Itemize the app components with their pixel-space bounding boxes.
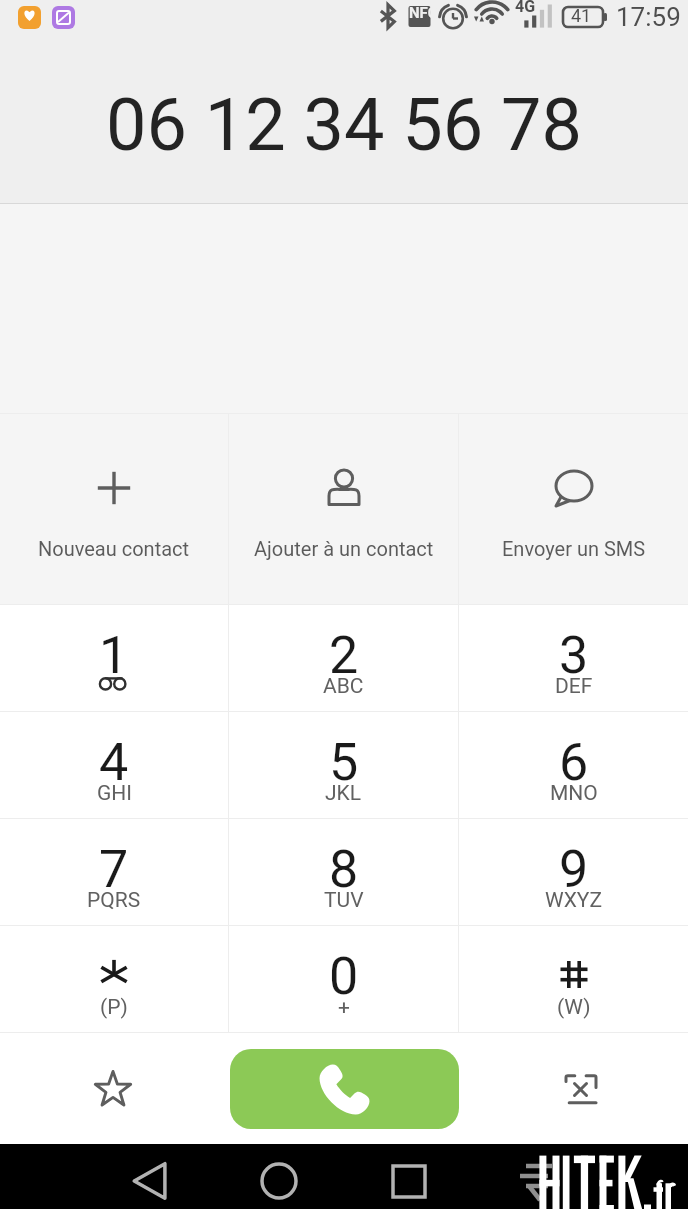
- staticText: Nouveau contact: [38, 537, 190, 560]
- button[interactable]: Envoyer un SMS: [459, 414, 688, 604]
- staticText: 7: [99, 839, 129, 900]
- staticText: GHI: [97, 781, 132, 806]
- staticText: WXYZ: [545, 888, 602, 913]
- button[interactable]: Retour: [118, 1149, 182, 1209]
- staticText: PQRS: [87, 888, 141, 913]
- staticText: JKL: [325, 781, 362, 806]
- button[interactable]: 3: [459, 605, 688, 711]
- staticText: 4G: [515, 0, 536, 16]
- staticText: 8: [329, 839, 359, 900]
- button[interactable]: 2: [229, 605, 458, 711]
- staticText: Envoyer un SMS: [502, 537, 646, 560]
- button[interactable]: 4: [0, 712, 228, 818]
- staticText: 4: [99, 732, 129, 793]
- button[interactable]: Applications récentes: [377, 1149, 441, 1209]
- button[interactable]: Favoris: [73, 1049, 153, 1129]
- button[interactable]: Nouveau contact: [0, 414, 228, 604]
- staticText: 3: [559, 625, 589, 686]
- button[interactable]: 7: [0, 819, 228, 925]
- staticText: ABC: [323, 674, 364, 699]
- staticText: (W): [557, 995, 591, 1020]
- button[interactable]: 0: [229, 926, 458, 1032]
- button[interactable]: 6: [459, 712, 688, 818]
- staticText: 17:59: [616, 2, 681, 32]
- staticText: Ajouter à un contact: [254, 537, 434, 560]
- button[interactable]: 5: [229, 712, 458, 818]
- staticText: +: [338, 995, 350, 1020]
- staticText: 1: [99, 625, 129, 686]
- staticText: MNO: [550, 781, 598, 806]
- staticText: 0: [329, 946, 359, 1007]
- button[interactable]: 8: [229, 819, 458, 925]
- button[interactable]: 1: [0, 605, 228, 711]
- button[interactable]: Appeler: [230, 1049, 459, 1129]
- button[interactable]: (W): [459, 926, 688, 1032]
- staticText: (P): [100, 995, 128, 1020]
- staticText: NFC: [409, 4, 438, 22]
- staticText: 9: [559, 839, 589, 900]
- staticText: 06 12 34 56 78: [0, 83, 688, 167]
- button[interactable]: Masquer le clavier: [541, 1049, 621, 1129]
- staticText: 5: [329, 732, 359, 793]
- staticText: 2: [329, 625, 359, 686]
- staticText: 41: [571, 5, 592, 26]
- button[interactable]: Ajouter à un contact: [229, 414, 458, 604]
- staticText: 6: [559, 732, 589, 793]
- button[interactable]: 9: [459, 819, 688, 925]
- staticText: DEF: [555, 674, 593, 699]
- button[interactable]: (P): [0, 926, 228, 1032]
- staticText: TUV: [324, 888, 364, 913]
- button[interactable]: Accueil: [247, 1149, 311, 1209]
